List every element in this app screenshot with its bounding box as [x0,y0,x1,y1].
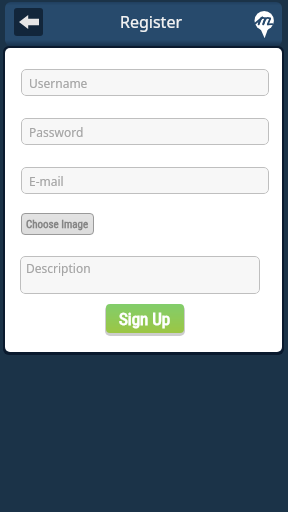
button[interactable]: App logo [254,7,280,41]
button[interactable]: E-mail [21,167,269,194]
button[interactable]: Choose Image [21,213,94,235]
button[interactable]: Back [14,8,43,36]
staticText: Username [29,75,88,91]
staticText: Register [120,11,183,33]
button[interactable]: Username [21,69,269,96]
staticText: Sign Up [119,309,171,329]
staticText: Password [29,124,84,140]
button[interactable]: Description [20,256,260,294]
button[interactable]: Password [21,118,269,145]
staticText: Description [26,260,91,276]
button[interactable]: Sign Up [106,304,184,333]
staticText: E-mail [29,173,64,189]
staticText: Choose Image [26,218,89,231]
